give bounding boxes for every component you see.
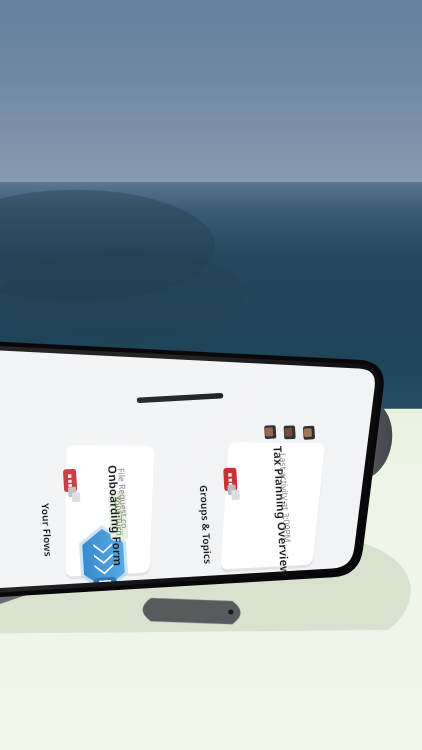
button[interactable]: Onboarding Form: [104, 465, 126, 567]
staticText: Tax Planning Overview: [269, 446, 293, 576]
button[interactable]: Flow progress 1 of 5: [84, 539, 124, 579]
button[interactable]: Open PDF attachment: [57, 468, 83, 494]
button[interactable]: Tax Planning Overview: [269, 446, 293, 576]
staticText: Groups & Topics: [197, 485, 215, 565]
staticText: Onboarding Form: [104, 465, 126, 567]
staticText: Last activity at 3:00PM: [276, 453, 294, 543]
staticText: Your Flows: [38, 503, 55, 557]
button[interactable]: Home indicator: [165, 383, 195, 413]
staticText: Your Turn: [111, 495, 126, 537]
button[interactable]: Open PDF attachment: [217, 466, 243, 492]
staticText: File Request co…: [115, 468, 131, 536]
